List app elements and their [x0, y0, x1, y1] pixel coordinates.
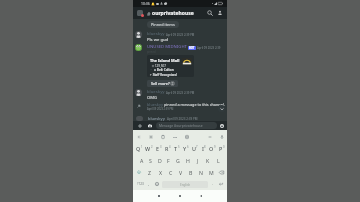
staticText: W: [145, 145, 151, 152]
staticText: 🔔: [151, 2, 155, 6]
staticText: blueskyy: [147, 31, 165, 37]
button[interactable]: H: [183, 154, 193, 166]
staticText: O: [209, 145, 214, 152]
button[interactable]: J: [193, 154, 203, 166]
button[interactable]: X: [155, 166, 166, 178]
button[interactable]: Camera: [147, 123, 153, 129]
staticText: N: [199, 169, 203, 176]
button[interactable]: L: [213, 154, 223, 166]
button[interactable]: B: [186, 166, 196, 178]
staticText: April 09 2023 2:39 PM: [167, 117, 198, 121]
staticText: 6: [187, 145, 189, 149]
staticText: E: [156, 145, 160, 152]
staticText: M: [209, 169, 214, 176]
staticText: 1: [141, 145, 143, 149]
button[interactable]: I: [199, 142, 208, 154]
button[interactable]: Pinned items: [147, 21, 179, 28]
button[interactable]: P: [217, 142, 226, 154]
button[interactable]: F: [164, 154, 173, 166]
button[interactable]: K: [203, 154, 213, 166]
staticText: Staff Recognized: [152, 73, 177, 77]
staticText: 3: [160, 145, 162, 149]
staticText: L: [217, 157, 220, 164]
button[interactable]: English: [162, 181, 208, 188]
button[interactable]: M: [206, 166, 216, 178]
staticText: P: [219, 145, 223, 152]
button[interactable]: Shift: [134, 166, 144, 178]
button[interactable]: Server: [136, 9, 145, 18]
button[interactable]: Stickers: [183, 133, 190, 140]
staticText: .: [212, 181, 214, 187]
button[interactable]: Expand toolbar: [135, 133, 142, 140]
staticText: X: [159, 169, 163, 176]
staticText: Belt Colton: [156, 68, 174, 72]
staticText: Sell more?: [151, 81, 170, 86]
button[interactable]: E: [154, 142, 163, 154]
button[interactable]: Members: [215, 8, 225, 18]
button[interactable]: Recents: [155, 192, 163, 200]
button[interactable]: C: [166, 166, 176, 178]
button[interactable]: O: [208, 142, 217, 154]
button[interactable]: Z: [144, 166, 155, 178]
button[interactable]: Backspace: [216, 166, 226, 178]
staticText: 10:36: [141, 1, 150, 6]
staticText: blueskyy: [148, 116, 165, 121]
button[interactable]: Clipboard: [159, 133, 166, 140]
button[interactable]: Sell more?: [147, 80, 178, 87]
staticText: H: [186, 157, 190, 164]
staticText: A: [140, 157, 144, 164]
button[interactable]: ?123: [135, 178, 145, 190]
button[interactable]: Y: [181, 142, 190, 154]
button[interactable]: R: [163, 142, 172, 154]
button[interactable]: Settings: [206, 133, 213, 140]
button[interactable]: Emoji: [152, 178, 162, 190]
button[interactable]: G: [173, 154, 183, 166]
staticText: Pinned items: [151, 22, 175, 27]
button[interactable]: Stickers: [219, 123, 225, 129]
staticText: April 09 2023 2:39 PM: [166, 33, 195, 37]
staticText: GIF: [173, 135, 177, 138]
staticText: D: [158, 157, 162, 164]
button[interactable]: D: [155, 154, 164, 166]
staticText: 2: [151, 145, 153, 149]
button[interactable]: T: [172, 142, 181, 154]
button[interactable]: Scroll to bottom: [218, 105, 225, 112]
staticText: BOT: [189, 46, 195, 50]
staticText: 129,507: [154, 64, 166, 68]
button[interactable]: Add attachment: [137, 123, 143, 129]
button[interactable]: ,: [145, 178, 152, 190]
staticText: •: [212, 2, 213, 6]
button[interactable]: S: [146, 154, 155, 166]
staticText: blueskyy: [147, 89, 165, 95]
staticText: Message #ourprivatehouse: [159, 123, 203, 128]
button[interactable]: Search: [205, 8, 215, 18]
button[interactable]: A: [137, 154, 146, 166]
button[interactable]: V: [176, 166, 186, 178]
button[interactable]: GIF: [171, 133, 178, 140]
button[interactable]: U: [190, 142, 199, 154]
staticText: ourprivatehouse: [152, 10, 194, 17]
staticText: The Island Mall: [150, 58, 180, 63]
staticText: 0: [223, 145, 225, 149]
button[interactable]: N: [196, 166, 206, 178]
button[interactable]: Enter: [217, 178, 225, 190]
button[interactable]: Google Assistant: [147, 133, 154, 140]
button[interactable]: Home: [176, 192, 184, 200]
staticText: ,: [148, 181, 150, 187]
staticText: U: [192, 145, 196, 152]
button[interactable]: W: [144, 142, 154, 154]
button[interactable]: Q: [134, 142, 144, 154]
staticText: pinned a message to this channel.: [164, 102, 225, 107]
button[interactable]: Back: [197, 192, 205, 200]
staticText: K: [206, 157, 210, 164]
staticText: ···: [150, 68, 153, 72]
staticText: OMG: [147, 95, 158, 101]
staticText: 9: [214, 145, 216, 149]
staticText: 5: [178, 145, 180, 149]
staticText: R: [165, 145, 169, 152]
button[interactable]: Voice input: [218, 133, 225, 140]
staticText: I: [202, 145, 204, 152]
staticText: J: [197, 157, 199, 164]
button[interactable]: Message #ourprivatehouse: [156, 122, 217, 129]
